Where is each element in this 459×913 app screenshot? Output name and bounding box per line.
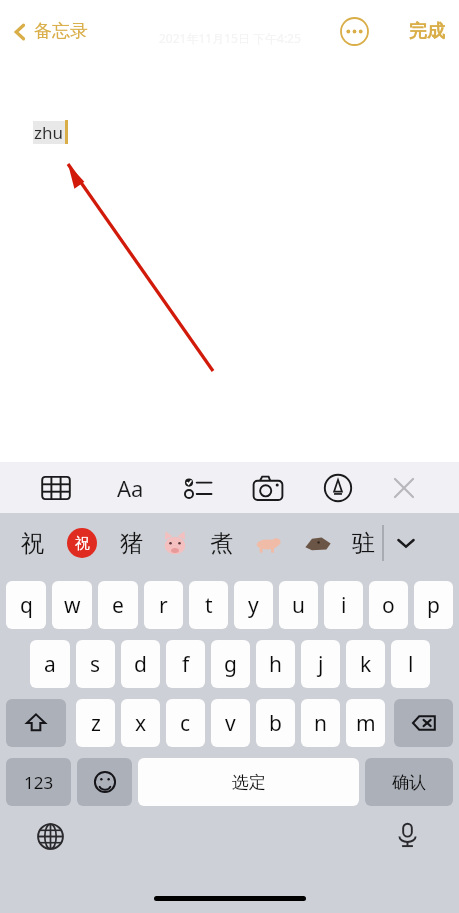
staticText: u <box>292 591 305 620</box>
button[interactable]: Boar <box>300 525 336 561</box>
staticText: 祝 <box>75 534 90 553</box>
button[interactable]: Dictation <box>389 816 425 852</box>
button[interactable]: t <box>189 581 228 629</box>
staticText: l <box>408 650 414 679</box>
button[interactable]: More options <box>338 15 370 47</box>
staticText: s <box>90 650 101 679</box>
button[interactable]: c <box>166 699 205 747</box>
staticText: d <box>134 650 147 679</box>
staticText: k <box>360 650 372 679</box>
staticText: 2021年11月15日 下午4:25 <box>159 30 301 46</box>
button[interactable]: u <box>279 581 318 629</box>
button[interactable]: a <box>30 640 70 688</box>
staticText: e <box>112 591 124 620</box>
staticText: f <box>182 650 190 679</box>
staticText: 备忘录 <box>34 20 88 43</box>
button[interactable]: 祝 emoji <box>60 521 104 565</box>
button[interactable]: Backspace <box>394 699 453 747</box>
staticText: n <box>314 709 327 738</box>
staticText: i <box>341 591 347 620</box>
staticText: j <box>318 650 324 679</box>
button[interactable]: 驻 <box>348 513 378 573</box>
button[interactable]: Pig <box>250 525 286 561</box>
button[interactable]: 选定 <box>138 758 359 806</box>
button[interactable]: f <box>166 640 205 688</box>
button[interactable]: n <box>301 699 340 747</box>
staticText: 完成 <box>409 20 445 43</box>
button[interactable]: h <box>256 640 295 688</box>
staticText: a <box>44 650 56 679</box>
staticText: x <box>135 709 147 738</box>
button[interactable]: Switch keyboard <box>32 818 68 854</box>
button[interactable]: 备忘录 <box>12 20 88 43</box>
staticText: b <box>269 709 282 738</box>
button[interactable]: Shift <box>6 699 66 747</box>
staticText: Aa <box>117 473 144 503</box>
staticText: 选定 <box>232 772 266 793</box>
staticText: t <box>205 591 213 620</box>
button[interactable]: l <box>391 640 430 688</box>
button[interactable]: Table <box>36 468 76 508</box>
button[interactable]: Close <box>384 468 424 508</box>
button[interactable]: 确认 <box>365 758 453 806</box>
staticText: 祝 <box>21 529 44 558</box>
staticText: q <box>20 591 33 620</box>
button[interactable]: 祝 <box>14 513 50 573</box>
staticText: 煮 <box>210 529 233 558</box>
button[interactable]: Camera <box>248 468 288 508</box>
staticText: w <box>64 591 81 620</box>
button[interactable]: Checklist <box>178 468 218 508</box>
button[interactable]: q <box>6 581 46 629</box>
staticText: 猪 <box>120 529 143 558</box>
button[interactable]: z <box>76 699 115 747</box>
button[interactable]: y <box>234 581 273 629</box>
button[interactable]: k <box>346 640 385 688</box>
button[interactable]: Emoji <box>77 758 132 806</box>
button[interactable]: v <box>211 699 250 747</box>
button[interactable]: r <box>144 581 183 629</box>
button[interactable]: g <box>211 640 250 688</box>
staticText: 驻 <box>352 529 375 558</box>
staticText: 123 <box>24 771 54 794</box>
staticText: zhu <box>34 121 64 144</box>
button[interactable]: e <box>98 581 138 629</box>
staticText: z <box>91 709 101 738</box>
button[interactable]: Pig face <box>158 526 192 560</box>
button[interactable]: 猪 <box>112 513 150 573</box>
button[interactable]: o <box>369 581 408 629</box>
staticText: o <box>382 591 395 620</box>
button[interactable]: Markup <box>318 468 358 508</box>
button[interactable]: j <box>301 640 340 688</box>
button[interactable]: Aa <box>108 466 152 510</box>
button[interactable]: x <box>121 699 160 747</box>
staticText: 确认 <box>392 772 426 793</box>
button[interactable]: 煮 <box>202 513 240 573</box>
button[interactable]: s <box>76 640 115 688</box>
button[interactable]: d <box>121 640 160 688</box>
staticText: c <box>180 709 191 738</box>
staticText: h <box>269 650 282 679</box>
staticText: p <box>427 591 440 620</box>
button[interactable]: 完成 <box>409 20 445 43</box>
staticText: m <box>356 709 376 738</box>
button[interactable]: p <box>414 581 453 629</box>
button[interactable]: Expand candidates <box>384 513 428 573</box>
button[interactable]: m <box>346 699 385 747</box>
button[interactable]: 123 <box>6 758 71 806</box>
button[interactable]: i <box>324 581 363 629</box>
button[interactable]: b <box>256 699 295 747</box>
staticText: v <box>225 709 236 738</box>
button[interactable]: w <box>52 581 92 629</box>
staticText: y <box>248 591 259 620</box>
staticText: g <box>224 650 237 679</box>
staticText: r <box>159 591 168 620</box>
